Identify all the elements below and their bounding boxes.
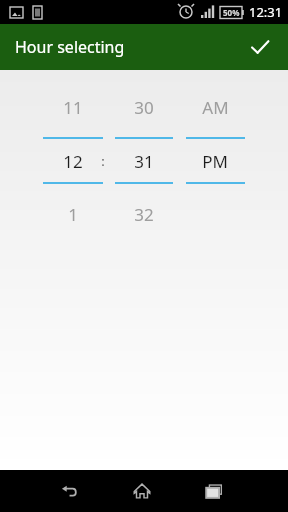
staticText: 1 [68, 203, 78, 226]
staticText: 11 [63, 96, 83, 119]
staticText: 50% [223, 7, 240, 18]
staticText: 30 [134, 96, 154, 119]
button[interactable]: PM [184, 146, 246, 176]
staticText: 12:31 [249, 3, 283, 21]
button[interactable]: Home [120, 470, 164, 512]
staticText: PM [202, 150, 228, 173]
button[interactable]: Recents [192, 470, 236, 512]
staticText: Hour selecting [15, 36, 125, 58]
button[interactable]: 12 [42, 146, 104, 176]
staticText: AM [202, 96, 229, 119]
button[interactable]: 30 [113, 92, 175, 122]
button[interactable]: 1 [42, 199, 104, 229]
button[interactable]: AM [184, 92, 246, 122]
button[interactable]: Back [48, 470, 92, 512]
staticText: 12 [63, 150, 83, 173]
button[interactable]: 32 [113, 199, 175, 229]
button[interactable]: 31 [113, 146, 175, 176]
button[interactable]: 11 [42, 92, 104, 122]
staticText: 31 [134, 150, 154, 173]
staticText: 32 [134, 203, 154, 226]
button[interactable]: Done [240, 27, 280, 67]
staticText: : [101, 152, 105, 170]
button[interactable]: : [95, 146, 111, 176]
